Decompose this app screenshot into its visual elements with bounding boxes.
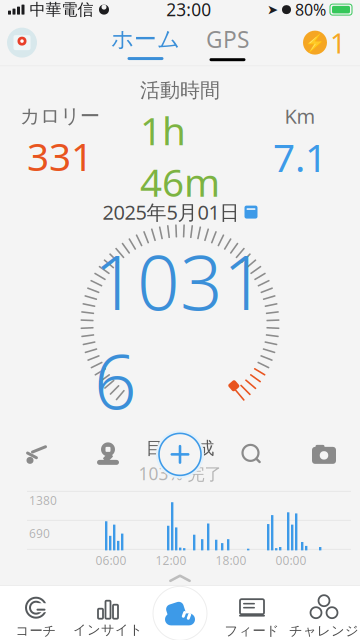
staticText: 目標達成 xyxy=(146,438,214,459)
button[interactable]: Route xyxy=(0,428,72,480)
button[interactable]: インサイト xyxy=(72,589,144,640)
staticText: インサイト xyxy=(73,622,143,638)
button[interactable]: GPS xyxy=(206,23,249,63)
button[interactable]: フィード xyxy=(216,589,288,640)
staticText: 103% 完了 xyxy=(138,462,221,485)
staticText: チャレンジ xyxy=(289,623,359,639)
button[interactable]: コーチ xyxy=(0,589,72,640)
staticText: 活動時間 xyxy=(140,78,220,103)
staticText: ⚡ xyxy=(304,33,326,52)
button[interactable]: Activity xyxy=(144,589,216,640)
staticText: 06:00 xyxy=(95,552,126,568)
button[interactable]: Streak flame xyxy=(300,24,330,62)
staticText: ホーム xyxy=(111,25,180,53)
button[interactable]: Camera xyxy=(288,428,360,480)
staticText: 1380 xyxy=(29,492,57,508)
staticText: 690 xyxy=(29,525,50,541)
button[interactable]: Map xyxy=(0,21,44,65)
staticText: 7.1 xyxy=(273,131,327,183)
staticText: 23:00 xyxy=(166,0,211,21)
staticText: カロリー xyxy=(20,104,100,128)
staticText: 2025年5月01日 xyxy=(102,199,239,225)
staticText: コーチ xyxy=(15,623,56,639)
button[interactable]: チャレンジ xyxy=(288,589,360,640)
button[interactable]: Search xyxy=(216,428,288,480)
staticText: 331 xyxy=(27,130,93,182)
staticText: 中華電信 xyxy=(29,0,93,19)
staticText: 1h 46m xyxy=(140,105,220,207)
staticText: GPS xyxy=(206,24,249,54)
staticText: 12:00 xyxy=(155,552,186,568)
button[interactable]: ホーム xyxy=(111,23,180,63)
button[interactable]: Expand xyxy=(150,570,210,586)
staticText: フィード xyxy=(224,623,279,639)
staticText: ➤ xyxy=(267,2,278,17)
staticText: 1 xyxy=(330,24,346,61)
button[interactable]: Add activity xyxy=(144,428,216,480)
staticText: 00:00 xyxy=(275,552,306,568)
staticText: 18:00 xyxy=(215,552,246,568)
staticText: 80% xyxy=(295,0,326,20)
staticText: 10316 xyxy=(94,231,266,430)
staticText: Km xyxy=(284,103,315,129)
button[interactable]: Places xyxy=(72,428,144,480)
